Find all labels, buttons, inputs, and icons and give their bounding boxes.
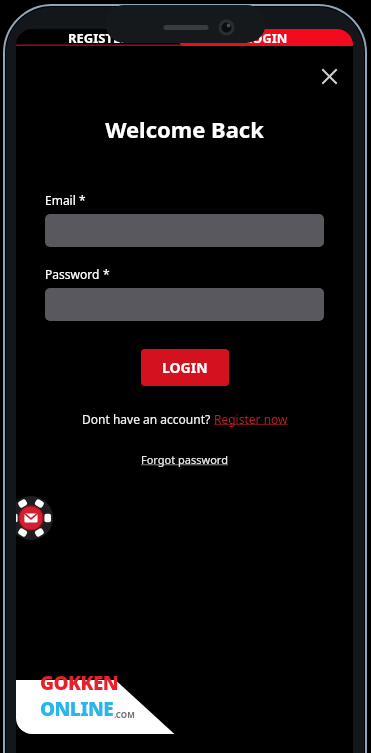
button[interactable]: Close [313, 60, 345, 92]
staticText: ONLINE [40, 696, 114, 722]
staticText: * [100, 266, 110, 282]
button[interactable]: Gokken Online [40, 670, 135, 722]
staticText: .COM [114, 709, 135, 720]
button[interactable]: Forgot password [138, 449, 231, 470]
staticText: LOGIN [245, 29, 288, 46]
staticText: Welcome Back [16, 114, 353, 144]
staticText: Password [45, 266, 100, 282]
button[interactable] [45, 214, 324, 247]
button[interactable] [45, 288, 324, 321]
staticText: LOGIN [162, 358, 208, 377]
staticText: Email [45, 192, 76, 208]
staticText: GOKKEN [40, 670, 118, 696]
staticText: Register now [214, 411, 288, 427]
staticText: REGISTER [68, 29, 129, 46]
staticText: * [76, 192, 86, 208]
button[interactable]: LOGIN [141, 349, 229, 386]
button[interactable]: REGISTER [16, 29, 181, 46]
button[interactable]: LOGIN [180, 29, 353, 46]
button[interactable]: Contact us [16, 496, 53, 540]
staticText: Dont have an account? [82, 411, 214, 427]
button[interactable]: Register now [214, 411, 288, 427]
staticText: Forgot password [141, 452, 228, 467]
